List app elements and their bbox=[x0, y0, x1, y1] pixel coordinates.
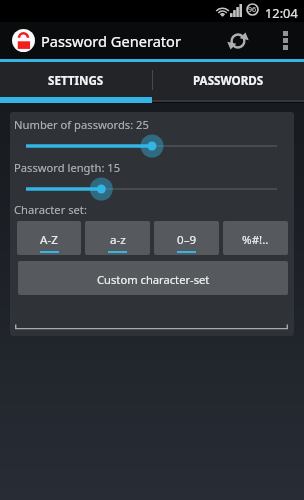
staticText: Custom character-set bbox=[97, 272, 210, 287]
button[interactable]: Refresh bbox=[216, 22, 260, 59]
staticText: 96 bbox=[248, 5, 257, 15]
button[interactable]: Slider bbox=[26, 178, 294, 200]
button[interactable]: Text field bbox=[15, 302, 288, 330]
button[interactable]: %#!.. bbox=[223, 221, 288, 255]
staticText: a-z bbox=[110, 232, 126, 248]
staticText: Password Generator bbox=[41, 31, 181, 51]
staticText: PASSWORDS bbox=[193, 73, 264, 89]
button[interactable]: SETTINGS bbox=[0, 62, 152, 97]
button[interactable]: More options bbox=[272, 22, 298, 59]
staticText: Character set: bbox=[14, 202, 87, 217]
staticText: Number of passwords: 25 bbox=[14, 117, 149, 132]
button[interactable]: A-Z bbox=[17, 221, 81, 255]
button[interactable]: a-z bbox=[85, 221, 150, 255]
staticText: %#!.. bbox=[242, 232, 269, 248]
button[interactable]: Custom character-set bbox=[18, 261, 288, 295]
staticText: 12:04 bbox=[265, 4, 298, 21]
staticText: A-Z bbox=[40, 232, 58, 248]
staticText: SETTINGS bbox=[48, 73, 104, 89]
button[interactable]: Slider bbox=[26, 135, 294, 157]
staticText: 0–9 bbox=[177, 232, 197, 248]
button[interactable]: PASSWORDS bbox=[152, 62, 304, 97]
button[interactable]: 0–9 bbox=[154, 221, 219, 255]
staticText: Password length: 15 bbox=[14, 160, 121, 175]
